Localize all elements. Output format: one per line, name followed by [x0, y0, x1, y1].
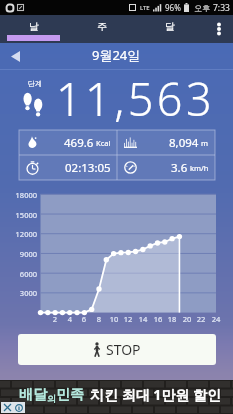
staticText: 치킨 최대 1만원 할인: [90, 385, 221, 404]
button[interactable]: Previous day: [0, 43, 30, 70]
staticText: 8: [91, 314, 107, 324]
staticText: 6000: [0, 269, 37, 279]
button[interactable]: 배달: [0, 380, 233, 414]
staticText: 의: [47, 393, 56, 404]
staticText: 9000: [0, 249, 37, 259]
button[interactable]: Close ad: [1, 402, 13, 413]
button[interactable]: 02:13:05: [26, 155, 111, 180]
staticText: 15000: [0, 210, 37, 220]
staticText: 오후: [194, 3, 210, 13]
button[interactable]: 3.6: [124, 155, 209, 180]
staticText: 달: [165, 20, 175, 33]
staticText: 7:33: [213, 2, 230, 14]
staticText: 8,094: [169, 135, 199, 151]
button[interactable]: 469.6: [26, 130, 111, 155]
staticText: 12: [120, 314, 136, 324]
staticText: 3000: [0, 288, 37, 298]
staticText: 10: [106, 314, 122, 324]
staticText: 날: [29, 20, 39, 33]
staticText: m: [201, 138, 209, 148]
button[interactable]: 날: [0, 15, 68, 43]
staticText: km/h: [190, 163, 209, 173]
button[interactable]: 8,094: [124, 130, 209, 155]
staticText: 2: [47, 314, 63, 324]
staticText: Kcal: [96, 138, 111, 148]
staticText: 18000: [0, 190, 37, 200]
staticText: 02:13:05: [65, 160, 111, 176]
staticText: 민족: [56, 386, 84, 404]
button[interactable]: STOP: [18, 334, 216, 365]
staticText: 469.6: [64, 135, 94, 151]
staticText: 6: [76, 314, 92, 324]
staticText: 16: [150, 314, 166, 324]
staticText: 22: [193, 314, 209, 324]
button[interactable]: Ad info: [13, 402, 25, 413]
staticText: 18: [164, 314, 180, 324]
staticText: STOP: [106, 340, 141, 359]
staticText: 11,563: [56, 68, 216, 126]
staticText: 24: [208, 314, 224, 324]
button[interactable]: 주: [68, 15, 136, 43]
staticText: 단계: [28, 79, 42, 88]
staticText: 9월24일: [92, 46, 141, 64]
staticText: 3.6: [171, 160, 188, 176]
staticText: 4: [62, 314, 78, 324]
staticText: 주: [97, 20, 107, 33]
staticText: LTE: [140, 4, 150, 12]
staticText: 14: [135, 314, 151, 324]
staticText: 12000: [0, 229, 37, 239]
staticText: 96%: [165, 2, 181, 13]
staticText: 20: [179, 314, 195, 324]
staticText: 배달: [19, 386, 47, 404]
button[interactable]: 달: [136, 15, 204, 43]
button[interactable]: More options: [204, 15, 233, 43]
